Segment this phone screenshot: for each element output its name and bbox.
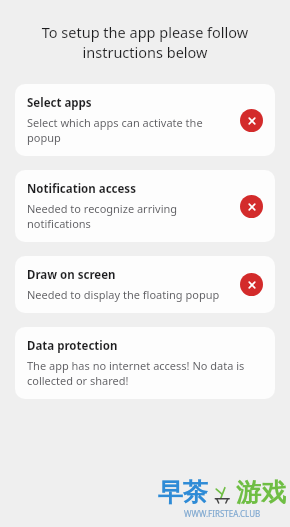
button[interactable]: Notification access	[15, 170, 275, 242]
button[interactable]: Draw on screen	[15, 256, 275, 313]
staticText: Select which apps can activate the popup	[27, 115, 232, 145]
staticText: WWW.FIRSTEA.CLUB	[184, 508, 261, 519]
staticText: Data protection	[27, 338, 118, 354]
button[interactable]: Draw on screen not granted	[240, 273, 263, 296]
staticText: 游戏	[236, 477, 286, 508]
staticText: Needed to display the floating popup	[27, 287, 220, 302]
button[interactable]: Select apps	[15, 84, 275, 156]
staticText: Draw on screen	[27, 267, 116, 283]
staticText: Select apps	[27, 95, 92, 111]
button[interactable]: Notification access not granted	[240, 195, 263, 218]
staticText: Notification access	[27, 181, 136, 197]
button[interactable]: Data protection	[15, 327, 275, 399]
staticText: To setup the app please follow instructi…	[26, 22, 264, 62]
staticText: 早茶	[158, 477, 208, 508]
staticText: Needed to recognize arriving notificatio…	[27, 201, 232, 231]
staticText: The app has no internet access! No data …	[27, 358, 255, 388]
button[interactable]: Select apps not configured	[240, 109, 263, 132]
